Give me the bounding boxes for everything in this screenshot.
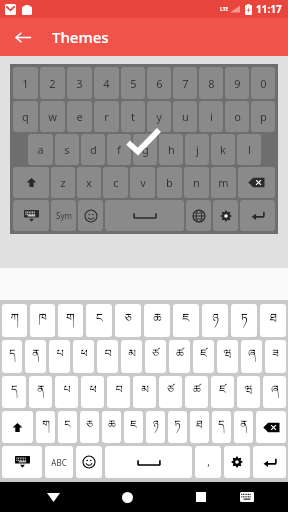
- button[interactable]: Emoji: [78, 200, 103, 231]
- button[interactable]: ཏ: [168, 411, 187, 443]
- button[interactable]: Settings: [224, 446, 250, 478]
- button[interactable]: Hide keyboard: [13, 200, 49, 231]
- button[interactable]: ང: [86, 304, 112, 337]
- button[interactable]: ན: [234, 411, 253, 443]
- button[interactable]: པ: [55, 376, 78, 408]
- button[interactable]: ཙ: [145, 340, 166, 373]
- button[interactable]: ཛ: [193, 340, 214, 373]
- button[interactable]: ཀ: [0, 300, 288, 482]
- button[interactable]: བ: [97, 340, 118, 373]
- button[interactable]: Enter: [240, 200, 275, 231]
- button[interactable]: ཐ: [190, 411, 209, 443]
- button[interactable]: Recents: [186, 482, 216, 512]
- button[interactable]: ཆ: [102, 411, 121, 443]
- button[interactable]: ཉ: [146, 411, 165, 443]
- button[interactable]: མ: [121, 340, 142, 373]
- button[interactable]: མ: [133, 376, 156, 408]
- button[interactable]: ཚ: [169, 340, 190, 373]
- button[interactable]: 7: [173, 67, 197, 99]
- button[interactable]: Hide keyboard: [2, 446, 42, 478]
- button[interactable]: Switch keyboard: [232, 482, 262, 512]
- button[interactable]: Shift: [13, 167, 49, 198]
- button[interactable]: ཛ: [211, 376, 234, 408]
- button[interactable]: ཕ: [73, 340, 94, 373]
- button[interactable]: d: [81, 134, 105, 165]
- button[interactable]: ཝ: [237, 376, 260, 408]
- button[interactable]: ང: [58, 411, 77, 443]
- button[interactable]: s: [55, 134, 79, 165]
- button[interactable]: 2: [40, 67, 65, 99]
- button[interactable]: Shift: [2, 411, 33, 443]
- button[interactable]: ག: [58, 304, 83, 337]
- button[interactable]: l: [237, 134, 261, 165]
- button[interactable]: 3: [67, 67, 92, 99]
- button[interactable]: u: [173, 101, 197, 132]
- button[interactable]: ABC: [45, 446, 73, 478]
- button[interactable]: 1: [13, 67, 38, 99]
- button[interactable]: ཁ: [30, 304, 55, 337]
- button[interactable]: ཚ: [185, 376, 208, 408]
- button[interactable]: ན: [25, 340, 46, 373]
- button[interactable]: t: [121, 101, 145, 132]
- button[interactable]: ཇ: [124, 411, 143, 443]
- button[interactable]: ཆ: [144, 304, 170, 337]
- button[interactable]: r: [94, 101, 119, 132]
- button[interactable]: ད: [2, 376, 26, 408]
- button[interactable]: Enter: [253, 446, 286, 478]
- button[interactable]: n: [184, 167, 209, 198]
- button[interactable]: ཟ: [265, 340, 286, 373]
- button[interactable]: z: [51, 167, 75, 198]
- button[interactable]: 4: [94, 67, 119, 99]
- button[interactable]: Settings: [213, 200, 238, 231]
- button[interactable]: k: [211, 134, 235, 165]
- button[interactable]: i: [199, 101, 223, 132]
- button[interactable]: ཇ: [173, 304, 199, 337]
- button[interactable]: 9: [225, 67, 249, 99]
- button[interactable]: Home: [112, 482, 142, 512]
- button[interactable]: ,: [195, 446, 221, 478]
- button[interactable]: e: [67, 101, 92, 132]
- button[interactable]: q: [13, 101, 38, 132]
- button[interactable]: ག: [36, 411, 55, 443]
- button[interactable]: ཅ: [115, 304, 141, 337]
- button[interactable]: Emoji: [76, 446, 102, 478]
- button[interactable]: ཞ: [263, 376, 286, 408]
- button[interactable]: ཙ: [159, 376, 182, 408]
- button[interactable]: Space: [105, 200, 184, 231]
- button[interactable]: 5: [121, 67, 145, 99]
- button[interactable]: ཉ: [202, 304, 228, 337]
- button[interactable]: 0: [251, 67, 275, 99]
- button[interactable]: ཅ: [80, 411, 99, 443]
- button[interactable]: b: [157, 167, 182, 198]
- button[interactable]: ཝ: [217, 340, 238, 373]
- button[interactable]: 6: [147, 67, 171, 99]
- button[interactable]: ད: [212, 411, 231, 443]
- button[interactable]: ཀ: [2, 304, 27, 337]
- button[interactable]: Back: [8, 22, 38, 52]
- button[interactable]: m: [211, 167, 236, 198]
- button[interactable]: བ: [107, 376, 130, 408]
- button[interactable]: p: [251, 101, 275, 132]
- button[interactable]: ཐ: [260, 304, 286, 337]
- button[interactable]: h: [159, 134, 183, 165]
- button[interactable]: 1: [0, 56, 288, 268]
- button[interactable]: f: [107, 134, 131, 165]
- button[interactable]: Back: [38, 482, 68, 512]
- button[interactable]: ཞ: [241, 340, 262, 373]
- button[interactable]: Sym: [51, 200, 76, 231]
- button[interactable]: w: [40, 101, 65, 132]
- button[interactable]: པ: [49, 340, 70, 373]
- button[interactable]: 8: [199, 67, 223, 99]
- button[interactable]: v: [130, 167, 155, 198]
- button[interactable]: ན: [29, 376, 52, 408]
- button[interactable]: Language: [186, 200, 211, 231]
- button[interactable]: o: [225, 101, 249, 132]
- button[interactable]: g: [133, 134, 157, 165]
- button[interactable]: ཏ: [231, 304, 257, 337]
- button[interactable]: Backspace: [238, 167, 275, 198]
- button[interactable]: x: [77, 167, 101, 198]
- button[interactable]: j: [185, 134, 209, 165]
- button[interactable]: ཕ: [81, 376, 104, 408]
- button[interactable]: c: [103, 167, 128, 198]
- button[interactable]: Backspace: [256, 411, 286, 443]
